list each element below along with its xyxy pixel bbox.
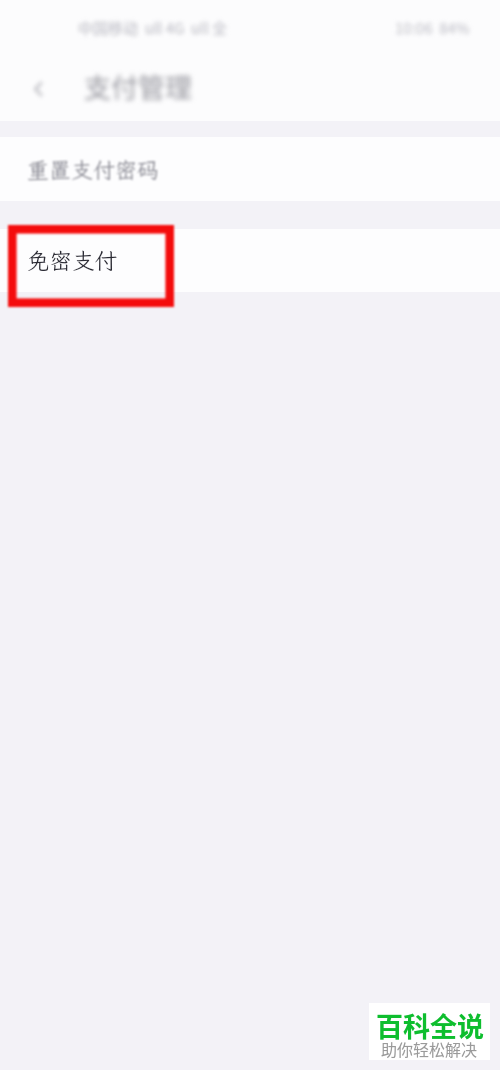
button[interactable]: 重置支付密码 bbox=[0, 137, 500, 201]
staticText: 中国移动 ull 4G ull 全 bbox=[78, 17, 228, 39]
staticText: 助你轻松解决 bbox=[381, 1037, 478, 1060]
button[interactable]: Back bbox=[20, 70, 58, 108]
staticText: 免密支付 bbox=[27, 246, 118, 276]
staticText: 10:06 84% bbox=[395, 17, 470, 39]
staticText: 百科全说 bbox=[376, 1006, 484, 1045]
button[interactable]: 免密支付 bbox=[0, 229, 500, 292]
staticText: 支付管理 bbox=[84, 67, 192, 106]
staticText: 重置支付密码 bbox=[27, 155, 160, 184]
